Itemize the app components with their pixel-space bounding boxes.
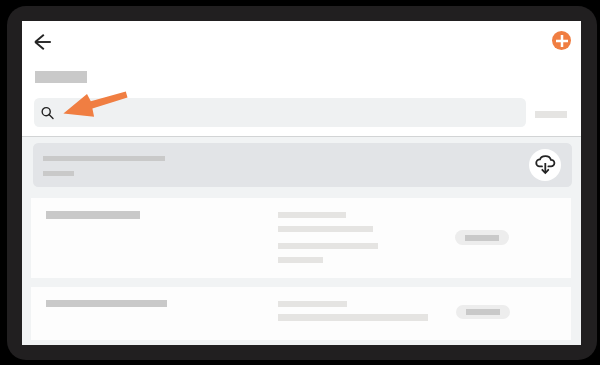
button[interactable]	[31, 287, 571, 340]
button[interactable]	[34, 98, 526, 127]
button[interactable]	[456, 305, 510, 319]
button[interactable]: Back	[31, 29, 55, 53]
button[interactable]: Download	[33, 143, 572, 187]
button[interactable]: Download	[529, 149, 561, 181]
button[interactable]: Add	[552, 31, 571, 50]
button[interactable]	[31, 198, 571, 278]
button[interactable]	[455, 230, 509, 245]
